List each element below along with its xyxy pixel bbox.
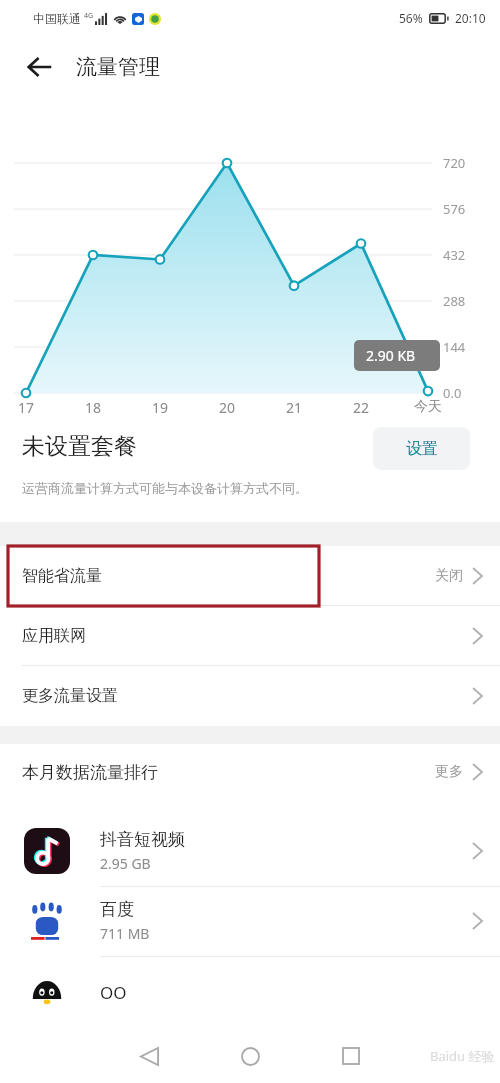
button[interactable]: OO (0, 957, 500, 1027)
staticText: 更多流量设置 (22, 686, 118, 706)
staticText: 288 (443, 292, 466, 310)
staticText: 19 (152, 398, 169, 417)
button[interactable]: 设置 (373, 427, 470, 470)
button[interactable]: 本月数据流量排行 (0, 744, 500, 800)
button[interactable]: 抖音短视频 (0, 816, 500, 886)
staticText: 流量管理 (76, 54, 160, 80)
staticText: 设置 (406, 439, 438, 459)
staticText: 中国联通 (33, 11, 81, 26)
staticText: OO (100, 981, 127, 1004)
button[interactable]: 更多流量设置 (0, 666, 500, 725)
button[interactable]: 智能省流量 (0, 546, 500, 605)
staticText: 20:10 (455, 10, 486, 26)
staticText: 20 (219, 398, 236, 417)
staticText: 17 (18, 398, 35, 417)
staticText: 2.90 KB (366, 346, 416, 365)
button[interactable]: Back (122, 1029, 176, 1083)
button[interactable]: Home (223, 1029, 277, 1083)
staticText: 智能省流量 (22, 566, 102, 586)
staticText: 0.0 (443, 384, 462, 402)
button[interactable]: Recents (324, 1029, 378, 1083)
staticText: 22 (353, 398, 370, 417)
staticText: 2.95 GB (100, 854, 151, 873)
staticText: 运营商流量计算方式可能与本设备计算方式不同。 (22, 480, 308, 496)
staticText: 432 (443, 246, 466, 264)
staticText: 未设置套餐 (22, 432, 137, 461)
staticText: 720 (443, 154, 466, 172)
staticText: 关闭 (435, 567, 463, 585)
staticText: 本月数据流量排行 (22, 762, 158, 783)
staticText: 21 (286, 398, 303, 417)
staticText: 56% (399, 10, 423, 26)
button[interactable]: 百度 (0, 886, 500, 956)
staticText: Baidu 经验 (430, 1047, 495, 1065)
button[interactable]: Back (12, 39, 68, 95)
staticText: 百度 (100, 899, 134, 920)
staticText: 144 (443, 338, 466, 356)
staticText: 更多 (435, 763, 463, 781)
staticText: 18 (85, 398, 102, 417)
staticText: 抖音短视频 (100, 829, 185, 850)
staticText: 711 MB (100, 924, 150, 943)
staticText: 4G (84, 11, 94, 21)
staticText: 应用联网 (22, 626, 86, 646)
button[interactable]: 应用联网 (0, 606, 500, 665)
staticText: 576 (443, 200, 466, 218)
staticText: 今天 (414, 398, 442, 416)
